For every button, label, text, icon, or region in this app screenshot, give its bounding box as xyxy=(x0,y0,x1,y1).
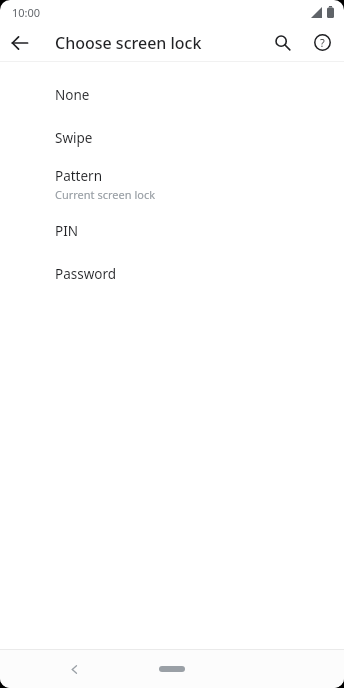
staticText: Password xyxy=(55,265,117,283)
button[interactable]: None xyxy=(0,73,344,116)
button[interactable]: Search xyxy=(262,24,302,61)
button[interactable]: Help xyxy=(302,24,342,61)
button[interactable]: Swipe xyxy=(0,116,344,159)
staticText: Choose screen lock xyxy=(55,32,262,54)
staticText: PIN xyxy=(55,222,79,240)
staticText: Pattern xyxy=(55,167,103,185)
staticText: ? xyxy=(320,35,325,50)
button[interactable]: Home xyxy=(155,661,189,677)
staticText: Swipe xyxy=(55,129,93,147)
staticText: 10:00 xyxy=(12,5,41,20)
button[interactable]: Back xyxy=(0,24,40,61)
button[interactable]: PIN xyxy=(0,209,344,252)
staticText: None xyxy=(55,86,90,104)
staticText: Current screen lock xyxy=(55,187,156,202)
button[interactable]: Back xyxy=(60,655,88,683)
button[interactable]: Pattern xyxy=(0,159,344,209)
button[interactable]: Password xyxy=(0,252,344,295)
